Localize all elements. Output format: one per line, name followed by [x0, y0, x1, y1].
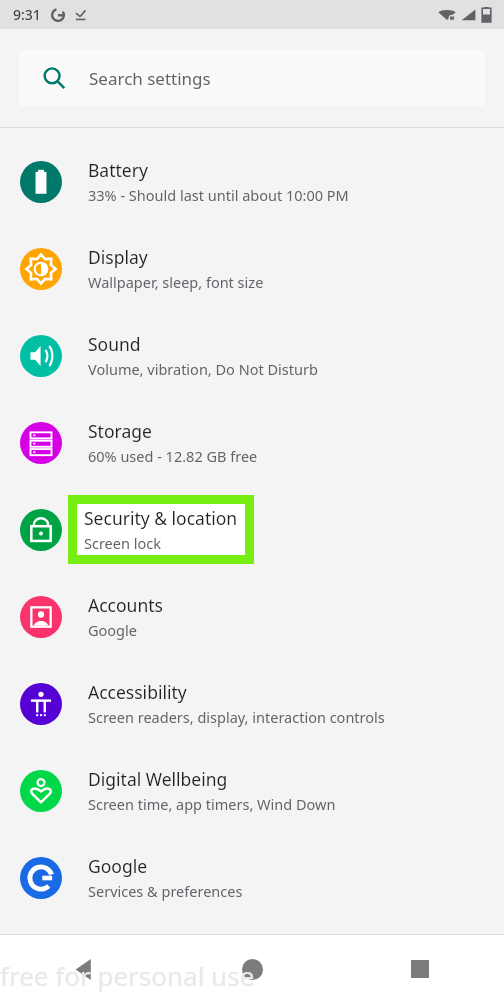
- staticText: Accessibility: [88, 680, 187, 704]
- button[interactable]: Sound: [0, 312, 504, 399]
- staticText: Google: [88, 620, 137, 640]
- staticText: Storage: [88, 419, 152, 443]
- button[interactable]: Recent apps: [336, 935, 504, 1003]
- staticText: 33% - Should last until about 10:00 PM: [88, 185, 349, 205]
- button[interactable]: Digital Wellbeing: [0, 747, 504, 834]
- staticText: Google: [88, 854, 148, 878]
- button[interactable]: Search settings: [19, 50, 485, 106]
- staticText: Sound: [88, 332, 141, 356]
- staticText: Screen lock: [84, 533, 161, 553]
- staticText: Accounts: [88, 593, 163, 617]
- staticText: 60% used - 12.82 GB free: [88, 446, 258, 466]
- staticText: Screen readers, display, interaction con…: [88, 707, 385, 727]
- staticText: Screen time, app timers, Wind Down: [88, 794, 336, 814]
- staticText: Battery: [88, 158, 148, 182]
- button[interactable]: Back: [0, 935, 168, 1003]
- staticText: Display: [88, 245, 148, 269]
- button[interactable]: Battery: [0, 138, 504, 225]
- button[interactable]: Security & location: [0, 486, 504, 573]
- button[interactable]: Accessibility: [0, 660, 504, 747]
- staticText: Digital Wellbeing: [88, 767, 228, 791]
- button[interactable]: Google: [0, 834, 504, 921]
- button[interactable]: Display: [0, 225, 504, 312]
- staticText: Search settings: [89, 67, 211, 90]
- staticText: Volume, vibration, Do Not Disturb: [88, 359, 318, 379]
- button[interactable]: Accounts: [0, 573, 504, 660]
- staticText: 9:31: [13, 5, 41, 24]
- staticText: Services & preferences: [88, 881, 243, 901]
- button[interactable]: Home: [168, 935, 336, 1003]
- staticText: Wallpaper, sleep, font size: [88, 272, 264, 292]
- staticText: free for personal use: [0, 958, 255, 993]
- staticText: Security & location: [84, 506, 238, 530]
- button[interactable]: Storage: [0, 399, 504, 486]
